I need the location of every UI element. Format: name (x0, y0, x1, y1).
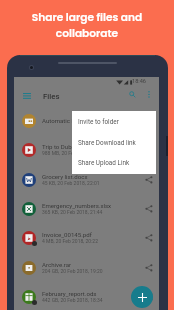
staticText: Automatic backup (42, 117, 92, 124)
button[interactable]: Grocery list.docx (14, 165, 159, 194)
staticText: 365 KB, 20 Feb 2018, 21:44 (42, 209, 103, 215)
staticText: Trip to Dubai.mp4 (42, 143, 91, 150)
staticText: 442 GB, 20 Feb 2018, 18:34 (42, 297, 103, 303)
button[interactable]: Invoice_00145.pdf (14, 223, 159, 252)
staticText: Invoice_00145.pdf (42, 231, 92, 238)
button[interactable]: Share Download link (72, 132, 156, 153)
button[interactable]: Trip to Dubai.mp4 (14, 135, 159, 164)
button[interactable]: Share (140, 288, 158, 306)
button[interactable]: Add file (131, 286, 153, 308)
button[interactable]: Share (140, 171, 158, 189)
staticText: Invite to folder (78, 118, 119, 126)
staticText: Archive.rar (42, 261, 72, 268)
button[interactable]: February_report.ods (14, 282, 159, 310)
button[interactable]: Share (140, 200, 158, 218)
staticText: 204 GB, 20 Feb 2018, 19:20 (42, 268, 103, 274)
staticText: February_report.ods (42, 290, 97, 297)
staticText: 18:46 (132, 78, 146, 85)
staticText: Share Download link (78, 139, 136, 147)
staticText: Share large files and collaborate (0, 10, 174, 40)
staticText: Share Upload Link (78, 159, 130, 167)
staticText: 45 KB, 20 Feb 2018, 22:01 (42, 180, 100, 186)
button[interactable]: Search (123, 85, 141, 103)
staticText: Grocery list.docx (42, 173, 88, 180)
button[interactable]: Share Upload Link (72, 152, 156, 173)
staticText: Files (43, 92, 60, 101)
staticText: Emergency_numbers.xlsx (42, 202, 112, 209)
button[interactable]: Automatic backup (14, 106, 159, 135)
button[interactable]: Archive.rar (14, 253, 159, 282)
button[interactable]: Emergency_numbers.xlsx (14, 194, 159, 223)
button[interactable]: Share (140, 141, 158, 159)
button[interactable]: Share (140, 229, 158, 247)
button[interactable]: More options (140, 85, 158, 103)
button[interactable]: Share (140, 112, 158, 130)
staticText: 988 MB, 20 Feb 2018, 22:21 (42, 150, 104, 156)
button[interactable]: Invite to folder (72, 111, 156, 132)
staticText: 4 MB, 20 Feb 2018, 20:22 (42, 238, 98, 244)
button[interactable]: Share (140, 259, 158, 277)
button[interactable]: Open navigation menu (17, 86, 37, 106)
